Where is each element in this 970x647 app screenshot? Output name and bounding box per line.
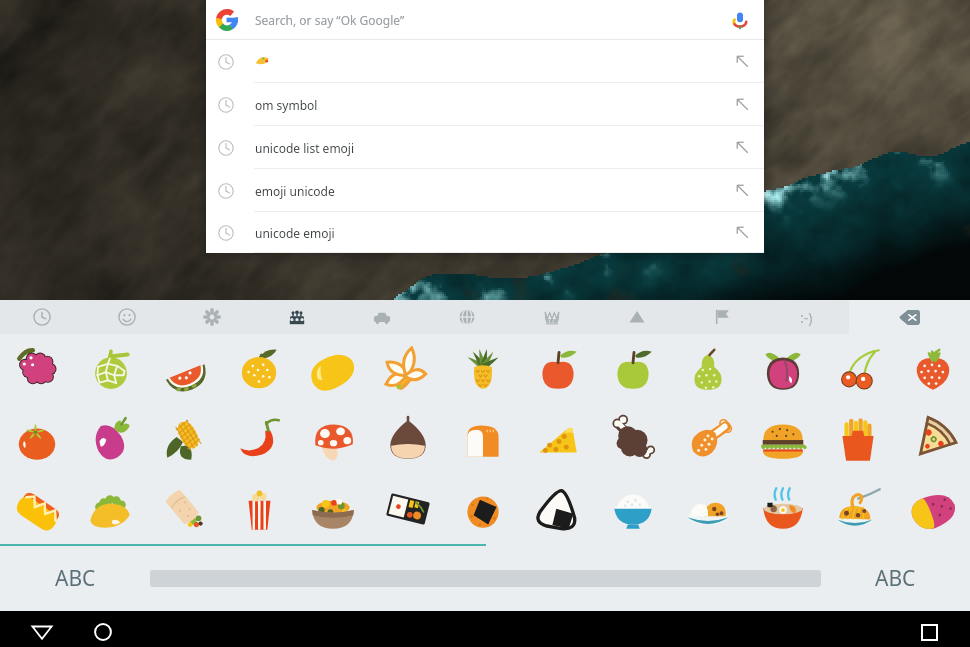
button[interactable]: Emoji 23	[745, 404, 820, 474]
button[interactable]: Emoji 11	[820, 334, 895, 404]
button[interactable]: Home	[94, 623, 112, 641]
button[interactable]: Emoji 6	[445, 334, 520, 404]
button[interactable]: Emoji 33	[520, 474, 595, 544]
button[interactable]: Emoji 25	[895, 404, 970, 474]
button[interactable]: Emoji 36	[745, 474, 820, 544]
button[interactable]: Emoji 15	[148, 404, 222, 474]
button[interactable]: Search, or say “Ok Google”	[206, 0, 764, 39]
button[interactable]: emoji unicode	[206, 169, 764, 212]
button[interactable]: Emoji 16	[222, 404, 296, 474]
button[interactable]: Back	[30, 620, 54, 644]
button[interactable]: Category 6	[509, 300, 594, 334]
staticText: unicode list emoji	[255, 140, 355, 156]
button[interactable]: Emoji 29	[222, 474, 296, 544]
button[interactable]: Emoji 34	[595, 474, 670, 544]
button[interactable]: Category 7	[594, 300, 679, 334]
other: Insert suggestion	[735, 183, 750, 198]
button[interactable]: Emoji 3	[222, 334, 296, 404]
button[interactable]: Emoji 18	[370, 404, 445, 474]
staticText: ABC	[55, 564, 96, 593]
button[interactable]: Emoji 35	[670, 474, 745, 544]
button[interactable]: Emoji 1	[74, 334, 148, 404]
button[interactable]: Emoji 27	[74, 474, 148, 544]
button[interactable]: Voice search	[730, 10, 750, 30]
button[interactable]: Category 8	[679, 300, 764, 334]
button[interactable]: Category 9	[764, 300, 849, 334]
button[interactable]: Backspace	[849, 300, 970, 334]
button[interactable]: Emoji 19	[445, 404, 520, 474]
other: Insert suggestion	[735, 54, 750, 69]
button[interactable]: Emoji 4	[296, 334, 370, 404]
button[interactable]: Category 1	[84, 300, 169, 334]
button[interactable]: om symbol	[206, 83, 764, 126]
button[interactable]: Category 4	[339, 300, 424, 334]
staticText: om symbol	[255, 97, 318, 113]
button[interactable]: Category 2	[169, 300, 254, 334]
staticText: unicode emoji	[255, 225, 335, 241]
other: Insert suggestion	[735, 97, 750, 112]
button[interactable]: Emoji 22	[670, 404, 745, 474]
button[interactable]: Emoji 7	[520, 334, 595, 404]
staticText: emoji unicode	[255, 183, 335, 199]
other: Insert suggestion	[735, 140, 750, 155]
button[interactable]: Emoji 26	[0, 474, 74, 544]
button[interactable]: Emoji 14	[74, 404, 148, 474]
button[interactable]: Emoji 21	[595, 404, 670, 474]
button[interactable]: unicode list emoji	[206, 126, 764, 169]
staticText: Search, or say “Ok Google”	[255, 12, 405, 28]
staticText: ABC	[875, 564, 916, 593]
button[interactable]: Emoji 32	[445, 474, 520, 544]
button[interactable]: Emoji 28	[148, 474, 222, 544]
button[interactable]: Category 3	[254, 300, 339, 334]
button[interactable]: Emoji 17	[296, 404, 370, 474]
button[interactable]: unicode emoji	[206, 212, 764, 253]
button[interactable]: Emoji 20	[520, 404, 595, 474]
button[interactable]: Emoji 9	[670, 334, 745, 404]
button[interactable]: Emoji 24	[820, 404, 895, 474]
button[interactable]: Emoji 30	[296, 474, 370, 544]
button[interactable]: Category 5	[424, 300, 509, 334]
button[interactable]: Emoji 2	[148, 334, 222, 404]
button[interactable]: Emoji 8	[595, 334, 670, 404]
button[interactable]: Emoji 5	[370, 334, 445, 404]
button[interactable]: ABC	[821, 546, 970, 611]
staticText: :-)	[800, 308, 813, 327]
button[interactable]: Recents	[922, 625, 937, 640]
button[interactable]: Emoji 0	[0, 334, 74, 404]
button[interactable]: Emoji 12	[895, 334, 970, 404]
other: Insert suggestion	[735, 225, 750, 240]
button[interactable]: Emoji 37	[820, 474, 895, 544]
button[interactable]: Emoji 13	[0, 404, 74, 474]
button[interactable]: Emoji 10	[745, 334, 820, 404]
button[interactable]: Emoji 31	[370, 474, 445, 544]
button[interactable]: ABC	[0, 546, 150, 611]
button[interactable]: Category 0	[0, 300, 84, 334]
button[interactable]: Emoji 38	[895, 474, 970, 544]
button[interactable]: Insert suggestion	[206, 40, 764, 83]
